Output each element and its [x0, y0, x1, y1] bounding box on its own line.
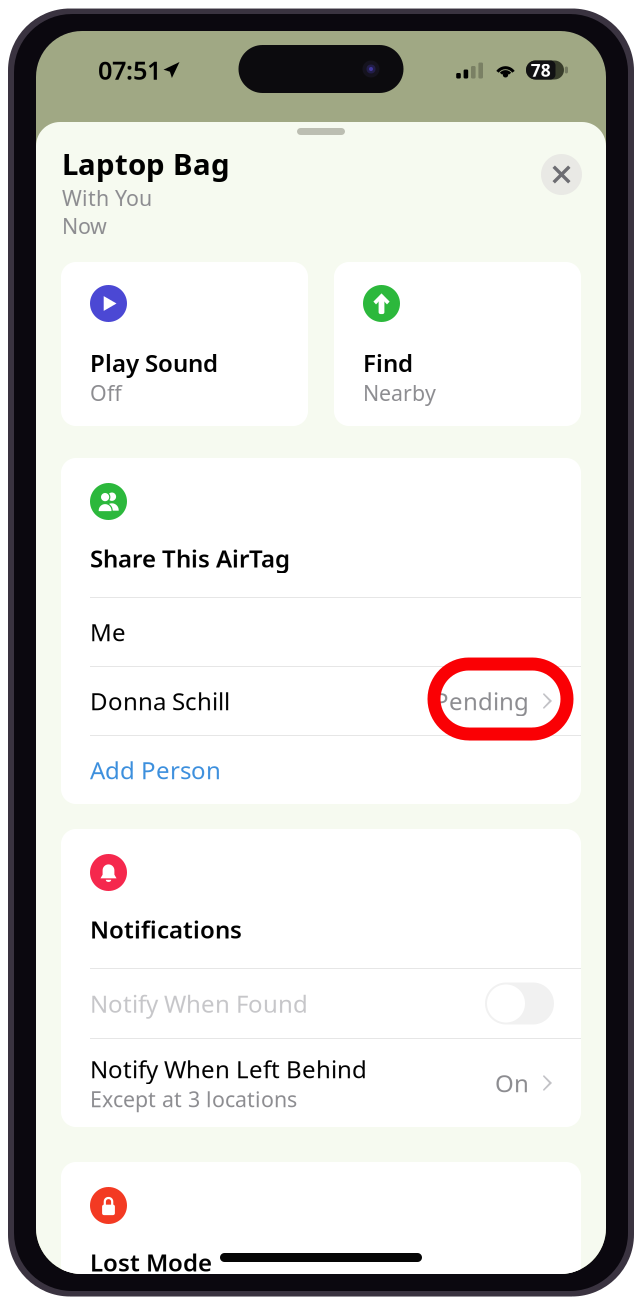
button[interactable]: Find	[334, 262, 581, 426]
staticText: Notify When Left Behind	[90, 1053, 367, 1085]
staticText: Notify When Found	[90, 988, 308, 1019]
staticText: On	[495, 1067, 529, 1099]
button[interactable]: Me	[61, 598, 581, 666]
staticText: Play Sound	[90, 347, 218, 379]
staticText: Me	[90, 616, 126, 648]
button[interactable]: Add Person	[61, 736, 581, 804]
staticText: Nearby	[363, 379, 436, 407]
button[interactable]: Notify When Left Behind	[61, 1039, 581, 1127]
staticText: Off	[90, 379, 122, 407]
staticText: 78	[531, 58, 551, 81]
button[interactable]: Notify When Found	[61, 969, 581, 1038]
button[interactable]: Play Sound	[61, 262, 308, 426]
staticText: Share This AirTag	[90, 542, 290, 574]
staticText: Laptop Bag	[62, 144, 230, 183]
staticText: Add Person	[90, 754, 221, 786]
button[interactable]: Donna Schill	[61, 667, 581, 735]
staticText: Donna Schill	[90, 685, 230, 717]
staticText: Lost Mode	[90, 1246, 212, 1278]
staticText: Now	[62, 212, 107, 240]
staticText: Pending	[434, 685, 529, 717]
staticText: Find	[363, 347, 413, 379]
staticText: 07:51	[98, 53, 161, 87]
staticText: Except at 3 locations	[90, 1085, 297, 1113]
staticText: With You	[62, 184, 152, 212]
staticText: Notifications	[90, 913, 242, 945]
button[interactable]: Close	[541, 154, 582, 195]
